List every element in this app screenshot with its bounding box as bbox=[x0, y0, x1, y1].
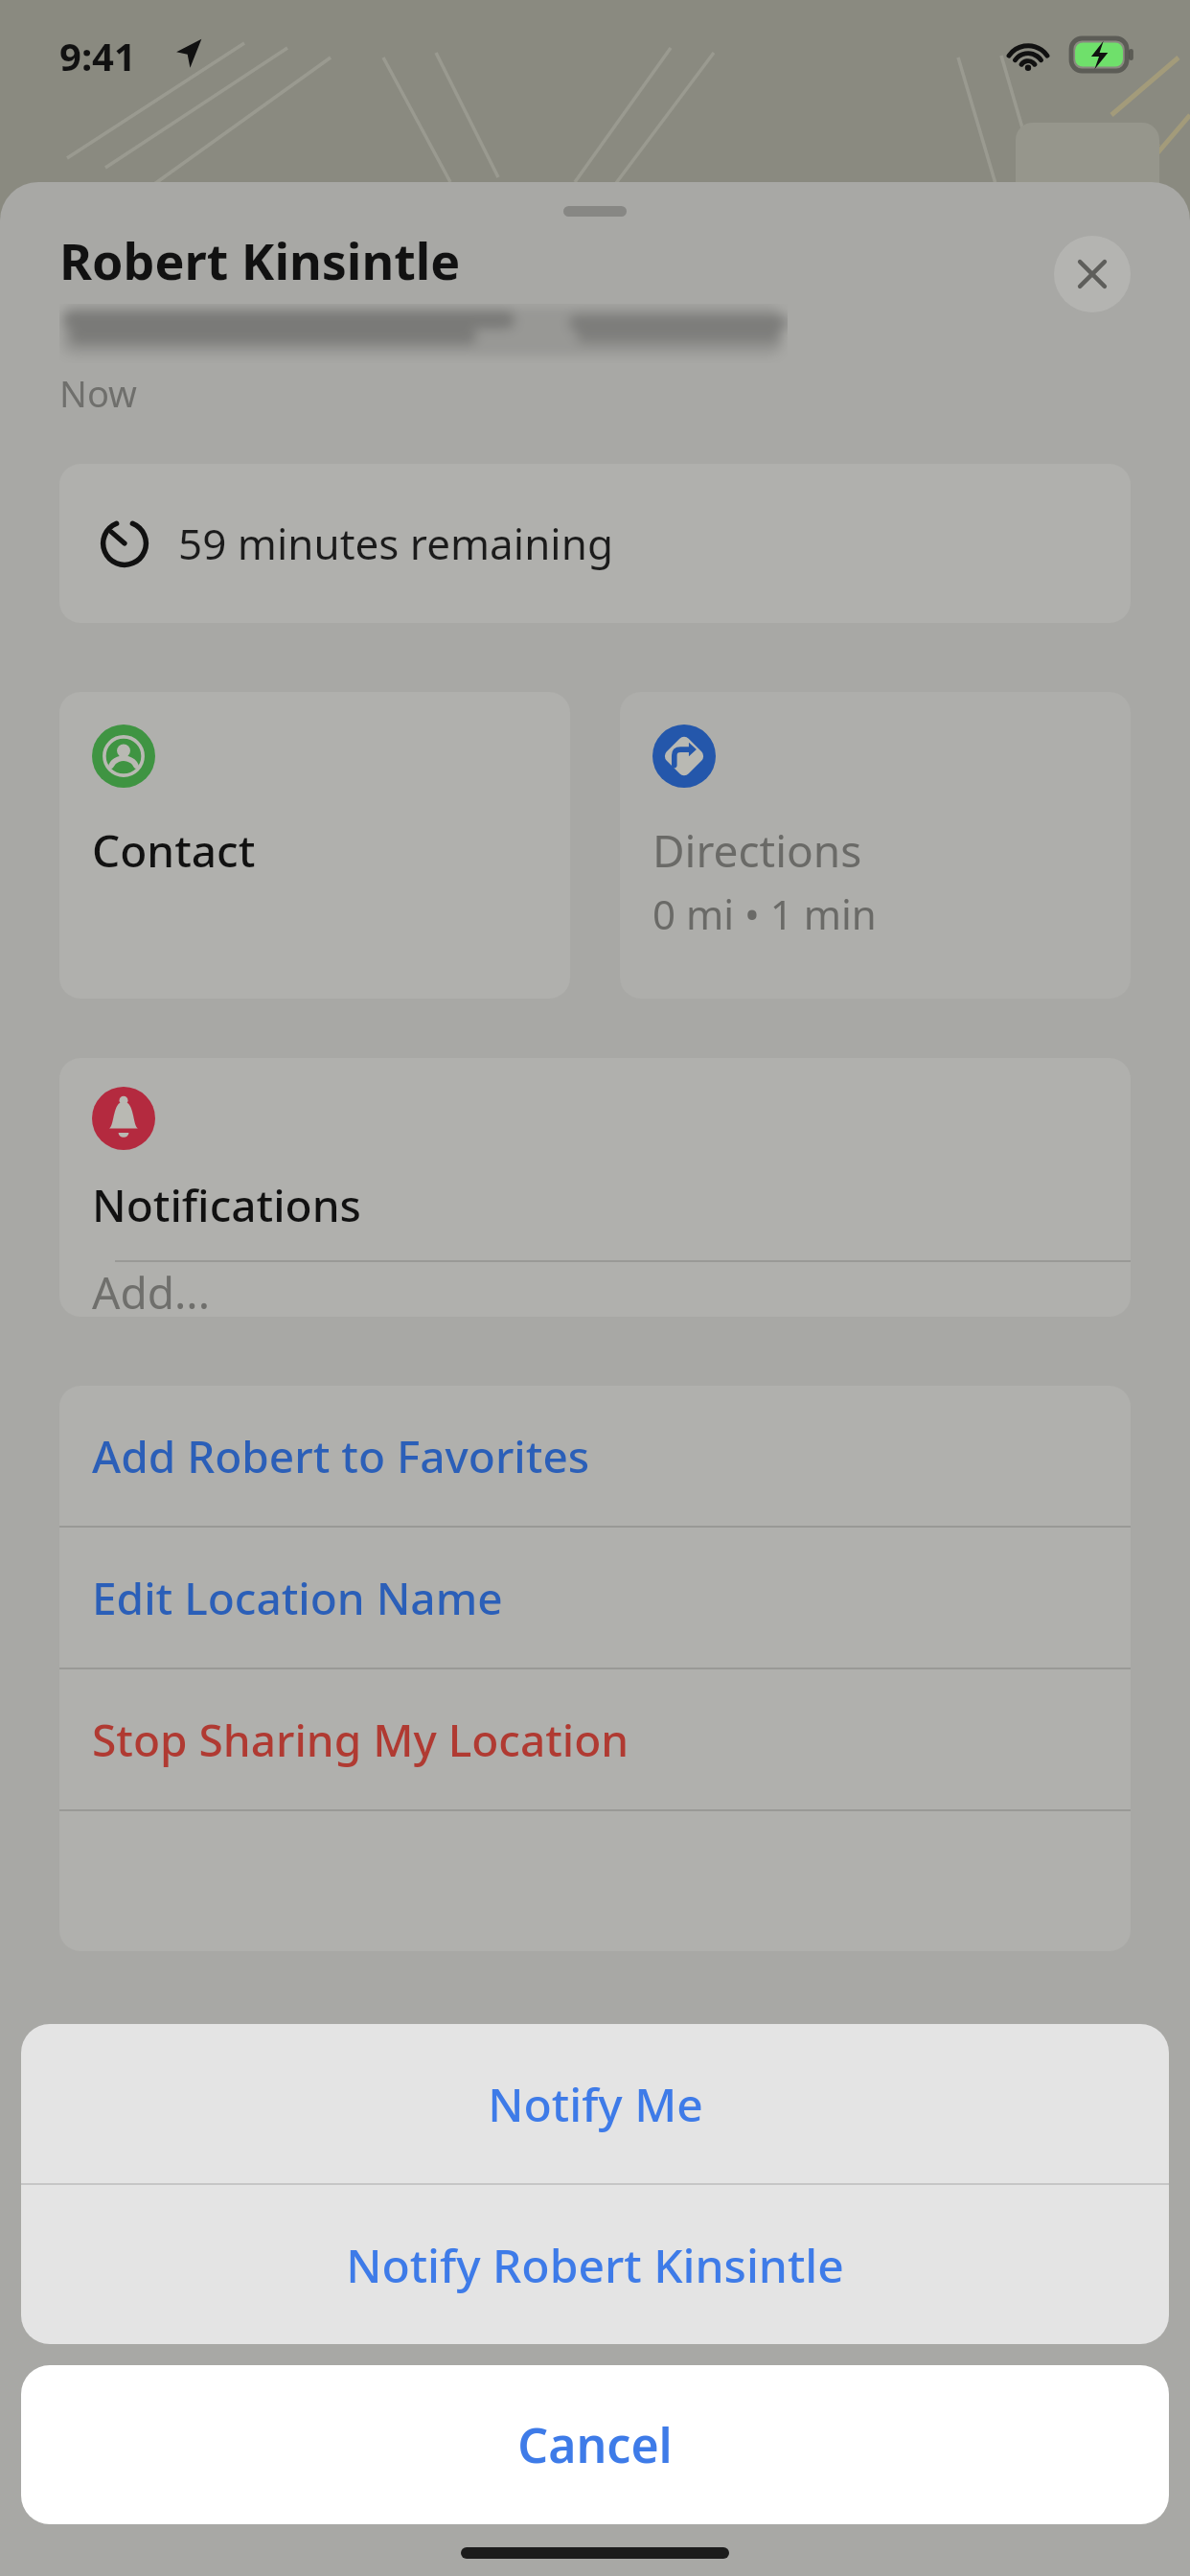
button[interactable]: 59 minutes remaining bbox=[59, 464, 1131, 623]
staticText: Contact bbox=[92, 820, 256, 881]
staticText: 59 minutes remaining bbox=[178, 515, 613, 572]
staticText: Notify Me bbox=[488, 2073, 703, 2135]
staticText: 0 mi • 1 min bbox=[652, 886, 877, 941]
staticText: Add Robert to Favorites bbox=[92, 1426, 590, 1486]
button[interactable]: Directions bbox=[620, 692, 1131, 999]
staticText: Notifications bbox=[92, 1175, 361, 1235]
button[interactable]: Notify Me bbox=[21, 2024, 1169, 2183]
button[interactable]: Notify Robert Kinsintle bbox=[21, 2185, 1169, 2344]
button[interactable]: Contact bbox=[59, 692, 570, 999]
staticText: Robert Kinsintle bbox=[59, 226, 461, 294]
staticText: Now bbox=[59, 368, 137, 418]
staticText: Directions bbox=[652, 820, 862, 881]
staticText: Stop Sharing My Location bbox=[92, 1710, 629, 1770]
staticText: Add... bbox=[92, 1262, 210, 1317]
button[interactable]: Add Robert to Favorites bbox=[59, 1386, 1131, 1526]
button[interactable]: Cancel bbox=[21, 2365, 1169, 2524]
button[interactable]: Add... bbox=[59, 1262, 1131, 1317]
staticText: Edit Location Name bbox=[92, 1568, 503, 1628]
staticText: Cancel bbox=[517, 2412, 673, 2477]
button[interactable]: Stop Sharing My Location bbox=[59, 1669, 1131, 1809]
button[interactable]: Close bbox=[1054, 236, 1131, 312]
staticText: 9:41 bbox=[59, 30, 136, 81]
staticText: Notify Robert Kinsintle bbox=[346, 2234, 844, 2296]
button[interactable]: Edit Location Name bbox=[59, 1528, 1131, 1667]
